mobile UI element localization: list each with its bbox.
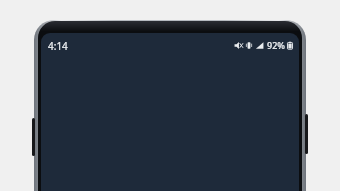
other: Power button <box>305 114 308 154</box>
staticText: 92% <box>267 39 285 51</box>
button[interactable]: 4:14 <box>48 39 68 53</box>
other: Volume buttons <box>32 118 35 156</box>
